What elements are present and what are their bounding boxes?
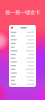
button[interactable]: Setting row [9, 71, 36, 75]
button[interactable]: Setting row [9, 75, 36, 79]
button[interactable]: Setting row [9, 64, 36, 67]
button[interactable]: Setting row [9, 38, 36, 42]
button[interactable]: Setting row [9, 82, 36, 86]
button[interactable]: Setting row [9, 34, 36, 38]
button[interactable]: Setting row [9, 45, 36, 49]
button[interactable]: Setting row [9, 30, 36, 34]
button[interactable]: Setting row [9, 53, 36, 56]
button[interactable]: Setting row [9, 79, 36, 82]
button[interactable]: Setting row [9, 49, 36, 53]
button[interactable]: Setting row [9, 60, 36, 64]
button[interactable]: Setting row [9, 67, 36, 71]
button[interactable]: Setting row [9, 56, 36, 60]
staticText: 摇一摇一键发卡 [5, 9, 40, 16]
button[interactable]: Setting row [9, 42, 36, 45]
